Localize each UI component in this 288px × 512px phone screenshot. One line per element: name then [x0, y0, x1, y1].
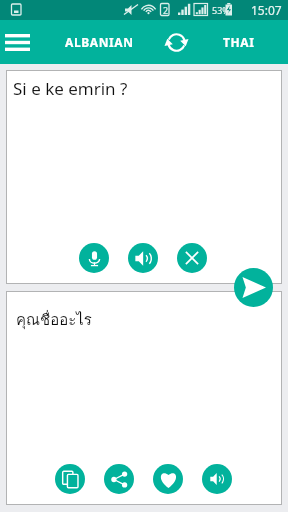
button[interactable]: Clear	[177, 243, 207, 273]
button[interactable]: Share	[104, 464, 134, 494]
staticText: ALBANIAN	[65, 34, 134, 50]
staticText: 15:07	[251, 2, 282, 18]
button[interactable]: ALBANIAN	[60, 20, 138, 64]
button[interactable]: Translate	[234, 268, 273, 307]
button[interactable]: Swap languages	[159, 25, 193, 59]
button[interactable]: Speak source	[128, 243, 158, 273]
button[interactable]: Copy	[55, 464, 85, 494]
staticText: คุณชื่ออะไร	[16, 308, 92, 332]
staticText: 2	[163, 4, 169, 16]
button[interactable]: THAI	[206, 20, 272, 64]
staticText: Si e ke emrin ?	[13, 77, 128, 100]
button[interactable]: Speak translation	[202, 464, 232, 494]
button[interactable]: Favorite	[153, 464, 183, 494]
button[interactable]: Microphone	[79, 243, 109, 273]
staticText: THAI	[223, 34, 255, 50]
button[interactable]: Menu	[2, 27, 32, 57]
staticText: 53%	[212, 4, 230, 16]
